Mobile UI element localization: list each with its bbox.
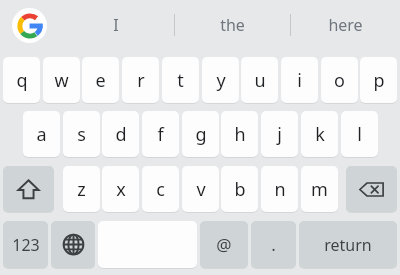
staticText: z (77, 177, 86, 202)
button[interactable]: j (261, 111, 298, 157)
button[interactable]: here (291, 0, 400, 50)
staticText: y (216, 68, 226, 93)
staticText: e (95, 68, 106, 93)
staticText: v (196, 177, 206, 202)
button[interactable]: h (221, 111, 258, 157)
button[interactable]: return (299, 221, 397, 268)
button[interactable]: I (57, 0, 174, 50)
button[interactable]: k (301, 111, 338, 157)
staticText: @ (216, 233, 232, 256)
button[interactable]: g (182, 111, 219, 157)
button[interactable]: Backspace (346, 166, 397, 212)
button[interactable]: i (281, 57, 318, 103)
button[interactable]: r (122, 57, 159, 103)
button[interactable]: 123 (3, 221, 48, 268)
staticText: k (315, 122, 325, 147)
staticText: w (54, 68, 69, 93)
button[interactable]: m (301, 166, 338, 212)
staticText: . (271, 233, 276, 256)
staticText: s (77, 122, 86, 147)
staticText: x (116, 177, 126, 202)
staticText: here (328, 14, 363, 36)
button[interactable]: s (63, 111, 100, 157)
staticText: b (234, 177, 246, 202)
staticText: t (177, 68, 184, 93)
button[interactable]: Google (12, 8, 47, 43)
button[interactable]: @ (200, 221, 248, 268)
button[interactable]: t (162, 57, 199, 103)
button[interactable]: p (360, 57, 397, 103)
staticText: f (157, 122, 164, 147)
staticText: g (195, 122, 207, 147)
button[interactable]: b (221, 166, 258, 212)
button[interactable]: v (182, 166, 219, 212)
staticText: j (277, 122, 282, 147)
button[interactable]: z (63, 166, 100, 212)
staticText: the (220, 14, 245, 36)
staticText: d (115, 122, 127, 147)
staticText: l (357, 122, 362, 147)
staticText: a (36, 122, 47, 147)
staticText: h (234, 122, 246, 147)
button[interactable]: Shift (3, 166, 54, 212)
staticText: q (16, 68, 28, 93)
button[interactable]: e (82, 57, 119, 103)
button[interactable]: l (341, 111, 378, 157)
button[interactable]: a (23, 111, 60, 157)
button[interactable]: y (202, 57, 239, 103)
button[interactable]: o (321, 57, 358, 103)
staticText: r (137, 68, 145, 93)
staticText: m (311, 177, 328, 202)
staticText: p (373, 68, 385, 93)
staticText: i (297, 68, 302, 93)
staticText: n (274, 177, 286, 202)
staticText: o (334, 68, 345, 93)
button[interactable]: q (3, 57, 40, 103)
button[interactable]: x (102, 166, 139, 212)
button[interactable]: Switch keyboard language (51, 221, 95, 268)
staticText: u (254, 68, 266, 93)
button[interactable]: f (142, 111, 179, 157)
button[interactable]: c (142, 166, 179, 212)
button[interactable]: the (175, 0, 290, 50)
button[interactable]: . (251, 221, 296, 268)
staticText: 123 (12, 234, 40, 256)
staticText: I (113, 14, 119, 36)
staticText: return (324, 234, 372, 256)
staticText: c (156, 177, 165, 202)
button[interactable]: u (241, 57, 278, 103)
button[interactable]: w (43, 57, 80, 103)
button[interactable]: n (261, 166, 298, 212)
button[interactable]: d (102, 111, 139, 157)
